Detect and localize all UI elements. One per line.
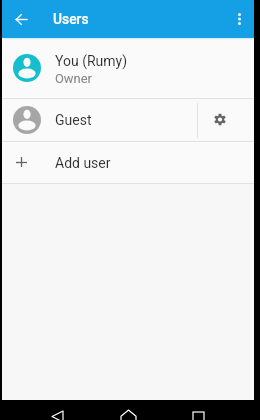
button[interactable]: Home	[121, 410, 136, 420]
button[interactable]: You (Rumy)	[2, 38, 254, 98]
button[interactable]: Navigate up	[12, 8, 34, 30]
staticText: Owner	[55, 71, 92, 86]
staticText: Users	[53, 11, 89, 27]
staticText: You (Rumy)	[55, 53, 128, 69]
staticText: Add user	[55, 155, 111, 171]
button[interactable]: More options	[228, 8, 250, 30]
button[interactable]: Recent apps	[193, 412, 204, 420]
button[interactable]: Add user	[2, 142, 254, 183]
staticText: Guest	[55, 112, 92, 128]
button[interactable]: Guest settings	[198, 99, 254, 141]
button[interactable]: Back	[52, 411, 63, 420]
button[interactable]: Guest	[2, 99, 197, 141]
